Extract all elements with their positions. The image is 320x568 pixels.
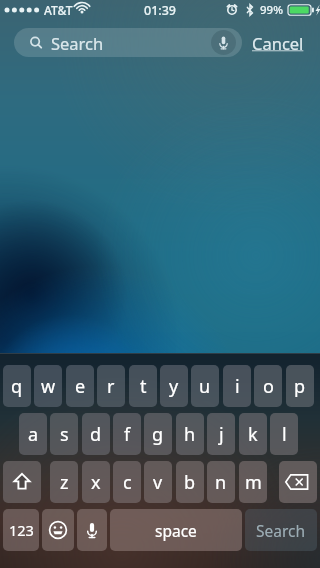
staticText: q <box>11 374 23 399</box>
staticText: s <box>60 422 69 447</box>
button[interactable]: l <box>270 413 298 455</box>
button[interactable]: b <box>176 461 204 503</box>
button[interactable]: s <box>50 413 78 455</box>
staticText: AT&T <box>44 2 73 18</box>
staticText: 99% <box>260 2 283 18</box>
button[interactable]: f <box>113 413 141 455</box>
staticText: Search <box>256 520 306 541</box>
button[interactable]: d <box>82 413 110 455</box>
staticText: d <box>90 422 102 447</box>
staticText: p <box>294 374 306 399</box>
staticText: h <box>184 422 196 447</box>
button[interactable]: k <box>239 413 267 455</box>
button[interactable]: Search <box>14 28 242 57</box>
staticText: n <box>215 470 227 495</box>
staticText: 123 <box>9 520 34 540</box>
staticText: b <box>184 470 196 495</box>
button[interactable]: h <box>176 413 204 455</box>
button[interactable]: e <box>66 365 94 407</box>
button[interactable]: o <box>254 365 282 407</box>
staticText: v <box>153 470 163 495</box>
button[interactable]: z <box>50 461 78 503</box>
staticText: z <box>60 470 69 495</box>
staticText: r <box>107 374 115 399</box>
staticText: i <box>235 374 240 399</box>
button[interactable]: q <box>3 365 31 407</box>
button[interactable]: n <box>207 461 235 503</box>
staticText: l <box>282 422 287 447</box>
staticText: u <box>199 374 211 399</box>
staticText: Cancel <box>252 32 304 54</box>
staticText: y <box>169 374 179 399</box>
staticText: w <box>41 374 56 399</box>
button[interactable]: Delete <box>279 461 317 503</box>
button[interactable]: r <box>97 365 125 407</box>
staticText: k <box>248 422 258 447</box>
staticText: e <box>75 374 86 399</box>
button[interactable]: a <box>19 413 47 455</box>
staticText: c <box>123 470 132 495</box>
button[interactable]: Dictate <box>77 509 107 551</box>
staticText: f <box>124 422 131 447</box>
button[interactable]: j <box>207 413 235 455</box>
staticText: j <box>219 422 224 447</box>
staticText: 01:39 <box>144 2 177 19</box>
button[interactable]: Search <box>245 509 317 551</box>
button[interactable]: g <box>144 413 172 455</box>
button[interactable]: t <box>129 365 157 407</box>
staticText: o <box>263 374 274 399</box>
button[interactable]: u <box>191 365 219 407</box>
staticText: x <box>91 470 101 495</box>
staticText: g <box>152 422 164 447</box>
staticText: a <box>28 422 39 447</box>
button[interactable]: i <box>223 365 251 407</box>
button[interactable]: Shift <box>3 461 41 503</box>
staticText: Search <box>51 32 104 54</box>
button[interactable]: c <box>113 461 141 503</box>
staticText: t <box>140 374 147 399</box>
button[interactable]: v <box>144 461 172 503</box>
button[interactable]: Cancel <box>246 29 310 56</box>
staticText: space <box>155 520 197 541</box>
button[interactable]: y <box>160 365 188 407</box>
button[interactable]: m <box>239 461 267 503</box>
button[interactable]: space <box>110 509 242 551</box>
button[interactable]: Emoji <box>42 509 74 551</box>
button[interactable]: Dictate <box>211 30 236 55</box>
staticText: m <box>245 470 262 495</box>
button[interactable]: 123 <box>3 509 39 551</box>
button[interactable]: p <box>286 365 314 407</box>
button[interactable]: w <box>34 365 62 407</box>
button[interactable]: x <box>82 461 110 503</box>
